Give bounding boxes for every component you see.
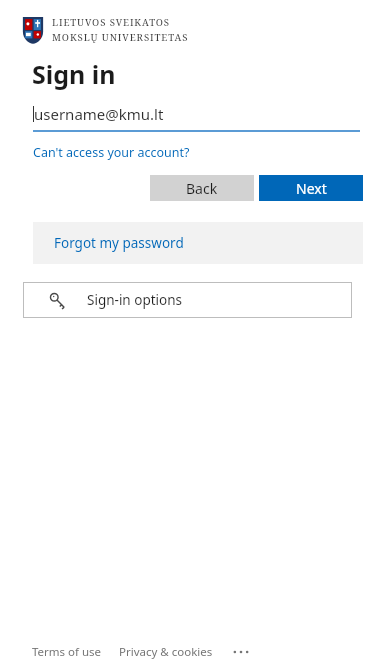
button[interactable]: Terms of use [32, 644, 102, 660]
staticText: username@kmu.lt [34, 104, 164, 124]
staticText: MOKSLŲ UNIVERSITETAS [52, 31, 189, 44]
button[interactable]: Sign-in options [23, 282, 352, 318]
button[interactable]: Can't access your account? [33, 144, 190, 161]
staticText: Back [186, 179, 218, 198]
button[interactable]: Back [150, 175, 254, 201]
staticText: LIETUVOS SVEIKATOS [52, 16, 171, 29]
button[interactable]: More options [229, 642, 253, 662]
staticText: Next [296, 179, 327, 198]
staticText: Sign in [32, 57, 116, 91]
staticText: Forgot my password [54, 234, 184, 252]
button[interactable]: Forgot my password [33, 222, 363, 264]
button[interactable]: username@kmu.lt [33, 104, 360, 132]
button[interactable]: Privacy & cookies [119, 644, 213, 660]
button[interactable]: Next [259, 175, 363, 201]
staticText: Sign-in options [87, 291, 183, 309]
